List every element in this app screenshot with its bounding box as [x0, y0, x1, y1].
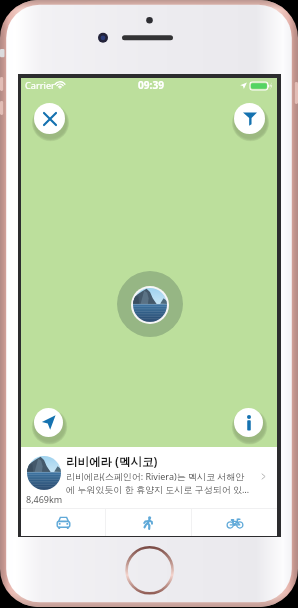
staticText: 09:39: [138, 78, 164, 92]
button[interactable]: Bike: [192, 509, 277, 536]
button[interactable]: Close: [34, 103, 65, 134]
button[interactable]: Filter: [234, 103, 265, 134]
staticText: 8,469km: [26, 493, 63, 505]
button[interactable]: 8,469km: [21, 447, 277, 508]
button[interactable]: Info: [234, 408, 263, 437]
staticText: 리비에라(스페인어: Riviera)는 멕시코 서해안에 누워있듯이 한 휴양…: [66, 470, 253, 495]
button[interactable]: Drive: [21, 509, 105, 536]
button[interactable]: Walk: [106, 509, 191, 536]
staticText: 리비에라 (멕시코): [66, 454, 158, 470]
staticText: Carrier: [25, 79, 55, 92]
button[interactable]: My location: [34, 408, 63, 437]
